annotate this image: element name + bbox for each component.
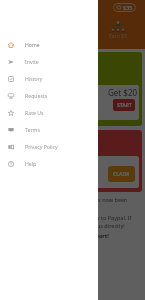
staticText: Help [25, 160, 37, 167]
button[interactable]: Requests [0, 87, 98, 104]
staticText: Invite [25, 58, 39, 65]
staticText: Payments are usually made instantly to P… [5, 214, 134, 230]
button[interactable]: Still need help? Contact us at support! [5, 232, 109, 239]
button[interactable]: Help [0, 155, 98, 172]
staticText: Your withdrawal request of $1.00 has now… [5, 196, 134, 212]
staticText: Rate Us [25, 109, 44, 116]
button[interactable]: CLAIM [108, 166, 135, 182]
staticText: Requests [25, 92, 48, 99]
button[interactable]: Privacy Policy [0, 138, 98, 155]
staticText: Earn $5 [109, 33, 127, 40]
button[interactable]: Terms [0, 121, 98, 138]
button[interactable]: START [113, 99, 135, 111]
staticText: Terms [25, 126, 40, 133]
staticText: $35 [123, 4, 133, 11]
button[interactable]: Home [0, 36, 98, 53]
button[interactable] [0, 0, 145, 300]
staticText: Home [25, 41, 40, 48]
staticText: Privacy Policy [25, 143, 58, 150]
staticText: START [117, 102, 132, 109]
staticText: CLAIM [113, 171, 130, 178]
staticText: History [25, 75, 43, 82]
button[interactable]: Invite [0, 53, 98, 70]
button[interactable]: Rate Us [0, 104, 98, 121]
button[interactable]: Balance [113, 3, 136, 12]
button[interactable]: History [0, 70, 98, 87]
staticText: Get $20 [108, 87, 138, 98]
